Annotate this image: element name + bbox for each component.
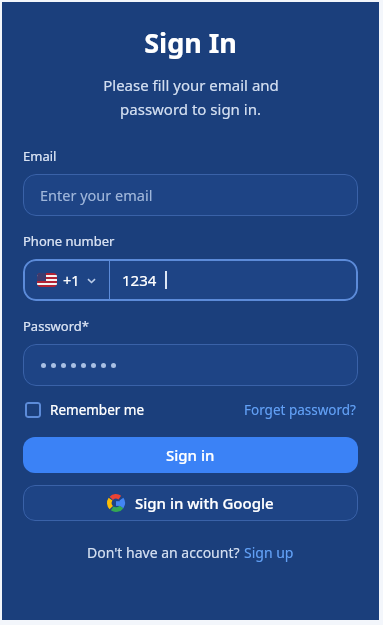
staticText: Sign up bbox=[244, 543, 294, 562]
staticText: Password* bbox=[23, 317, 89, 335]
button[interactable]: Enter your email bbox=[23, 174, 358, 216]
staticText: password to sign in. bbox=[120, 99, 261, 119]
staticText: Email bbox=[23, 147, 57, 165]
button[interactable]: Select country code bbox=[23, 262, 109, 298]
staticText: Remember me bbox=[50, 401, 145, 419]
button[interactable] bbox=[23, 344, 358, 386]
button[interactable]: Sign up bbox=[244, 543, 294, 562]
button[interactable]: Remember me bbox=[23, 398, 147, 422]
staticText: 1234 bbox=[122, 270, 157, 290]
staticText: Enter your email bbox=[40, 185, 153, 205]
staticText: +1 bbox=[63, 270, 80, 290]
staticText: Phone number bbox=[23, 232, 115, 250]
staticText: Forget password? bbox=[244, 401, 356, 419]
button[interactable]: Sign in with Google bbox=[23, 485, 358, 521]
button[interactable]: Forget password? bbox=[242, 398, 358, 422]
staticText: Sign in with Google bbox=[135, 493, 274, 513]
staticText: Don't have an account? bbox=[87, 543, 244, 562]
button[interactable]: Sign in bbox=[23, 437, 358, 473]
staticText: Please fill your email and bbox=[103, 75, 279, 95]
button[interactable]: Select country code bbox=[23, 259, 358, 301]
staticText: Sign In bbox=[144, 24, 237, 61]
staticText: Sign in bbox=[166, 445, 215, 465]
